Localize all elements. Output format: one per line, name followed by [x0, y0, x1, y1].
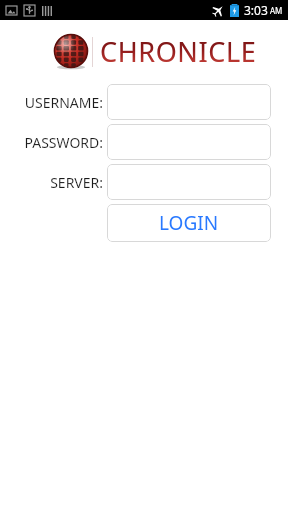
staticText: USERNAME:: [0, 93, 103, 112]
staticText: PASSWORD:: [0, 133, 103, 152]
button[interactable]: USERNAME:: [107, 84, 271, 120]
staticText: 3:03: [244, 2, 268, 18]
staticText: AM: [270, 5, 283, 16]
button[interactable]: LOGIN: [107, 204, 271, 242]
button[interactable]: PASSWORD:: [107, 124, 271, 160]
staticText: SERVER:: [0, 173, 103, 192]
staticText: LOGIN: [159, 210, 219, 236]
staticText: CHRONICLE: [100, 33, 257, 70]
button[interactable]: SERVER:: [107, 164, 271, 200]
